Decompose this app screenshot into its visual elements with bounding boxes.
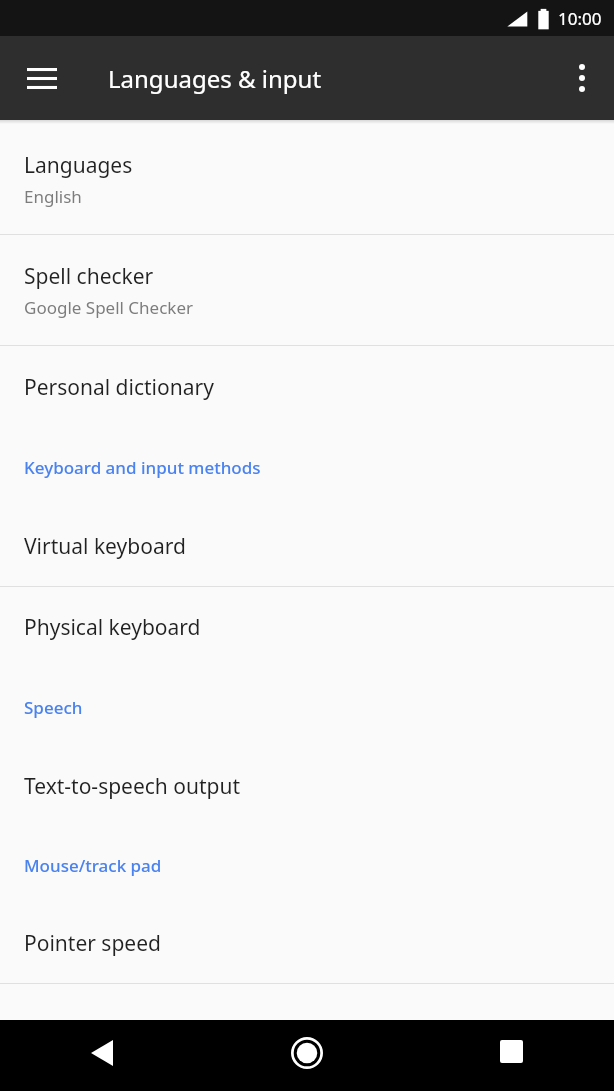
button[interactable]: Languages — [0, 124, 614, 234]
button[interactable]: Open navigation menu — [6, 42, 78, 114]
button[interactable]: Personal dictionary — [0, 346, 614, 428]
staticText: Languages — [24, 151, 133, 180]
button[interactable]: Virtual keyboard — [0, 506, 614, 586]
staticText: Virtual keyboard — [24, 532, 186, 561]
staticText: Google Spell Checker — [24, 296, 194, 319]
staticText: Keyboard and input methods — [24, 456, 261, 479]
button[interactable]: Recent apps — [409, 1020, 614, 1091]
button[interactable]: Spell checker — [0, 235, 614, 345]
button[interactable]: Text-to-speech output — [0, 746, 614, 826]
staticText: Speech — [24, 696, 83, 719]
staticText: 10:00 — [558, 7, 602, 30]
button[interactable]: More options — [550, 46, 614, 110]
staticText: Physical keyboard — [24, 613, 201, 642]
button[interactable]: Physical keyboard — [0, 587, 614, 668]
staticText: Spell checker — [24, 262, 154, 291]
staticText: Languages & input — [108, 62, 322, 95]
button[interactable]: Home — [204, 1020, 409, 1091]
staticText: English — [24, 185, 82, 208]
staticText: Text-to-speech output — [24, 772, 241, 801]
staticText: Mouse/track pad — [24, 854, 162, 877]
button[interactable]: Back — [0, 1020, 204, 1091]
staticText: Pointer speed — [24, 929, 161, 958]
staticText: Personal dictionary — [24, 373, 214, 402]
button[interactable]: Pointer speed — [0, 904, 614, 983]
